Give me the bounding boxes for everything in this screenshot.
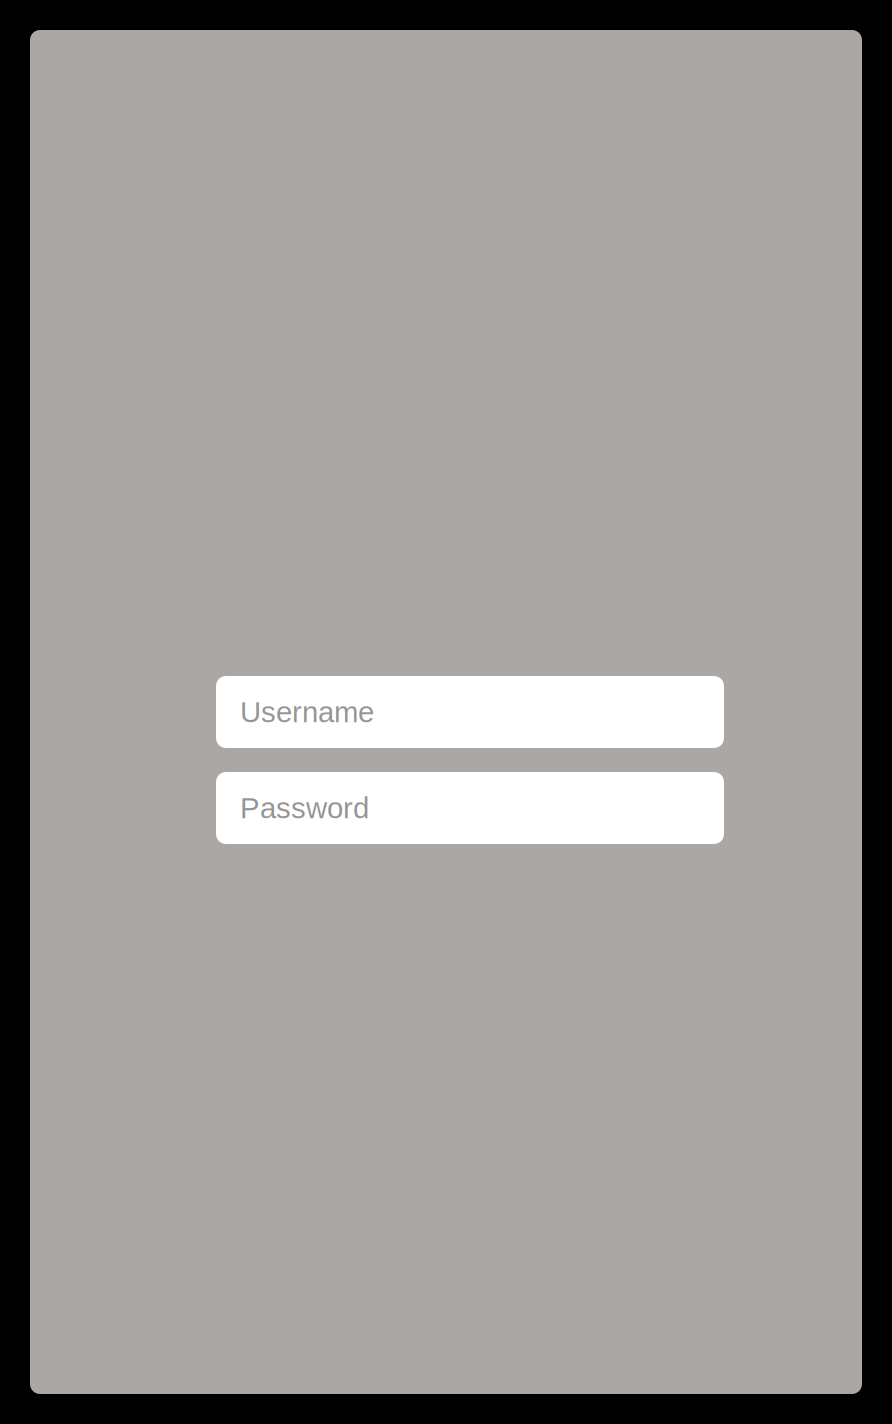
- staticText: Password: [240, 792, 369, 824]
- staticText: Username: [240, 696, 374, 728]
- button[interactable]: Username: [216, 676, 724, 748]
- button[interactable]: Password: [216, 772, 724, 844]
